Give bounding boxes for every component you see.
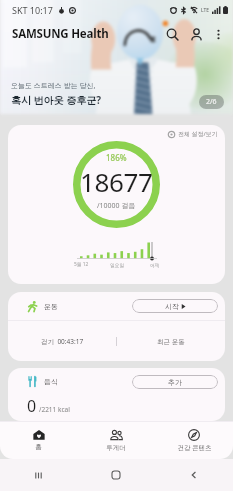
staticText: LTE — [201, 7, 210, 14]
staticText: 추가 — [168, 378, 182, 387]
button[interactable]: Home — [77, 459, 155, 491]
button[interactable]: 추가 — [132, 375, 218, 389]
button[interactable]: Search — [160, 22, 184, 46]
button[interactable]: 전체 설정/보기 — [168, 130, 218, 138]
staticText: 일요일 — [110, 262, 125, 268]
staticText: 18677 — [80, 164, 153, 199]
staticText: /2211 kcal — [39, 405, 70, 414]
staticText: 건강 콘텐츠 — [177, 443, 212, 452]
staticText: 2/6 — [206, 97, 217, 107]
staticText: 최근 운동 — [157, 337, 185, 346]
staticText: /10000 걸음 — [97, 201, 136, 211]
staticText: 시작 — [165, 302, 179, 311]
staticText: 5월 12 — [74, 261, 89, 268]
staticText: 전체 설정/보기 — [178, 130, 218, 138]
staticText: 0 — [27, 395, 37, 417]
button[interactable]: Profile — [184, 22, 208, 46]
staticText: 운동 — [44, 302, 58, 311]
staticText: 음식 — [44, 377, 58, 386]
button[interactable]: More options — [208, 24, 228, 44]
staticText: SAMSUNG Health — [12, 26, 109, 42]
button[interactable]: Back — [155, 459, 233, 491]
button[interactable]: 홈 — [0, 421, 77, 459]
button[interactable]: Recents — [0, 459, 77, 491]
staticText: 투게더 — [106, 444, 126, 452]
staticText: SKT 10:17 — [12, 4, 53, 16]
staticText: 오늘도 스트레스 받는 당신, — [11, 81, 96, 91]
button[interactable]: 투게더 — [77, 421, 155, 459]
staticText: 어제 — [150, 262, 160, 268]
button[interactable]: 최근 운동 — [117, 321, 225, 361]
button[interactable]: 시작 — [132, 299, 218, 313]
staticText: 186% — [106, 152, 127, 163]
button[interactable]: 걷기 00:43:17 — [8, 321, 116, 361]
button[interactable]: 건강 콘텐츠 — [155, 421, 233, 459]
staticText: 홈 — [35, 443, 42, 451]
button[interactable]: 오늘도 스트레스 받는 당신, — [0, 48, 233, 117]
staticText: 걷기 00:43:17 — [41, 337, 84, 346]
staticText: 혹시 번아웃 증후군? — [11, 93, 101, 107]
